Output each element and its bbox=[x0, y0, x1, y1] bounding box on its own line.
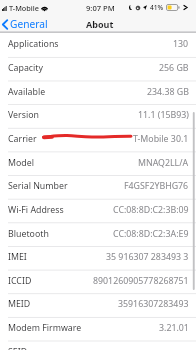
button[interactable]: Carrier bbox=[0, 128, 196, 152]
staticText: General bbox=[10, 17, 48, 31]
staticText: MNAQ2LL/A bbox=[138, 157, 189, 169]
button[interactable]: Version bbox=[0, 104, 196, 128]
staticText: 256 GB bbox=[159, 62, 189, 74]
staticText: 35 916307 283493 3 bbox=[106, 251, 189, 263]
staticText: Model bbox=[8, 157, 34, 169]
staticText: Wi-Fi Address bbox=[8, 204, 64, 216]
staticText: T-Mobile 30.1 bbox=[133, 133, 189, 145]
button[interactable]: Wi-Fi Address bbox=[0, 199, 196, 223]
staticText: 130 bbox=[173, 38, 189, 50]
staticText: Applications bbox=[8, 38, 59, 50]
button[interactable]: Capacity bbox=[0, 57, 196, 81]
staticText: Available bbox=[8, 86, 46, 98]
button[interactable]: IMEI bbox=[0, 246, 196, 270]
staticText: About bbox=[86, 18, 114, 30]
staticText: 35916307283493 bbox=[118, 298, 189, 310]
button[interactable]: Applications bbox=[0, 33, 196, 57]
staticText: Serial Number bbox=[8, 180, 68, 192]
staticText: IMEI bbox=[8, 251, 27, 263]
staticText: 41% bbox=[150, 3, 164, 12]
button[interactable]: Serial Number bbox=[0, 175, 196, 199]
staticText: Modem Firmware bbox=[8, 322, 82, 334]
staticText: T-Mobile bbox=[9, 3, 39, 13]
button[interactable]: SEID bbox=[0, 341, 196, 350]
staticText: 11.1 (15B93) bbox=[138, 109, 189, 121]
button[interactable]: Modem Firmware bbox=[0, 317, 196, 341]
staticText: F4GSF2YBHG76 bbox=[124, 180, 189, 192]
button[interactable]: Available bbox=[0, 81, 196, 105]
button[interactable]: ICCID bbox=[0, 270, 196, 294]
staticText: Version bbox=[8, 109, 39, 121]
staticText: CC:08:8D:C2:3B:09 bbox=[113, 204, 189, 216]
button[interactable]: Bluetooth bbox=[0, 223, 196, 247]
staticText: Bluetooth bbox=[8, 228, 49, 240]
button[interactable]: Model bbox=[0, 152, 196, 176]
staticText: ICCID bbox=[8, 275, 32, 287]
staticText: 234.38 GB bbox=[147, 86, 189, 98]
button[interactable]: General bbox=[0, 15, 54, 33]
staticText: 3.21.01 bbox=[159, 322, 189, 334]
staticText: 9:07 PM bbox=[86, 3, 115, 13]
staticText: 8901260905778268751 bbox=[93, 275, 189, 287]
staticText: Capacity bbox=[8, 62, 43, 74]
staticText: CC:08:8D:C2:3A:E9 bbox=[113, 228, 189, 240]
staticText: MEID bbox=[8, 298, 31, 310]
staticText: SEID bbox=[8, 346, 28, 350]
button[interactable]: MEID bbox=[0, 293, 196, 317]
staticText: Carrier bbox=[8, 133, 37, 145]
